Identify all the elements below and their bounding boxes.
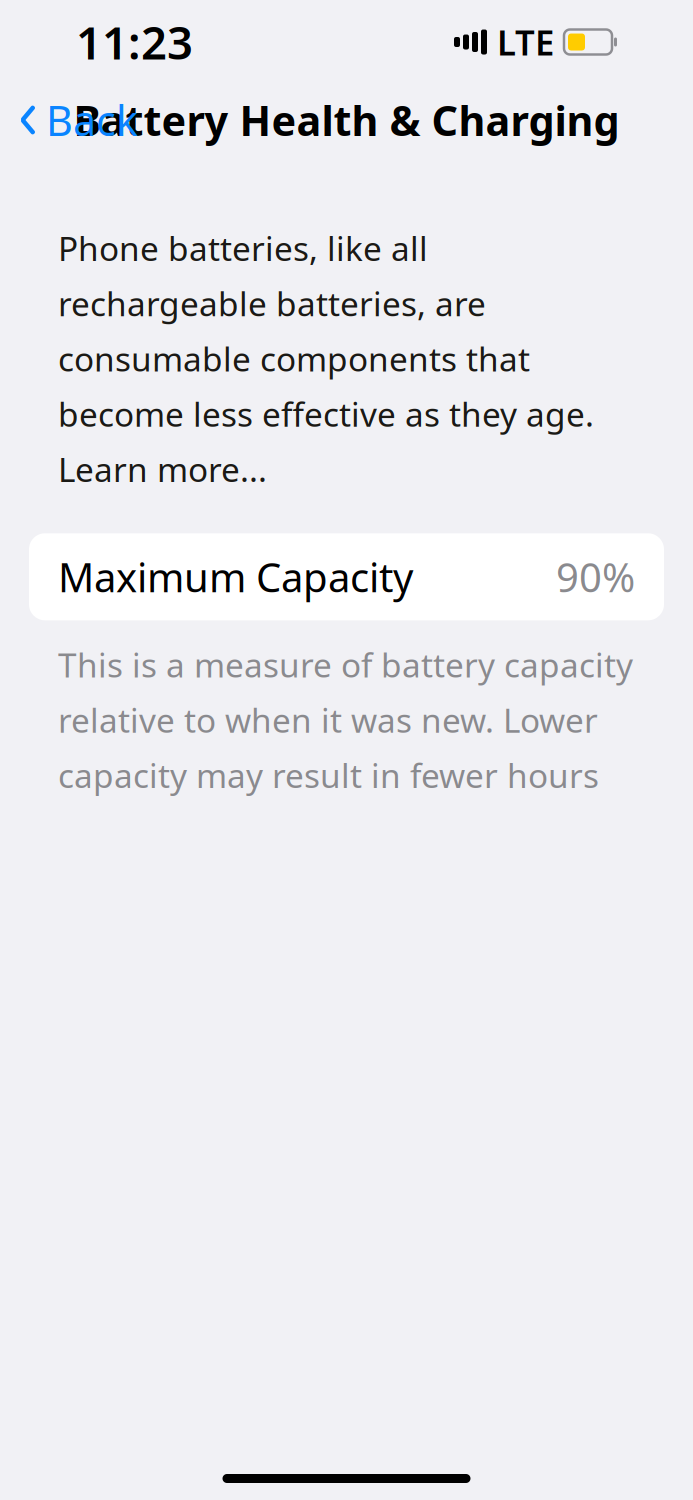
staticText: LTE (497, 19, 554, 65)
staticText: To reduce battery aging, iPhone learns f… (58, 1416, 629, 1500)
button[interactable]: Maximum Capacity (0, 533, 693, 620)
staticText: Maximum Capacity (58, 550, 413, 603)
button[interactable]: Back (4, 85, 152, 155)
staticText: 11:23 (76, 12, 193, 72)
staticText: This is a measure of battery capacity re… (58, 642, 633, 852)
staticText: Back (46, 93, 138, 147)
staticText: 90% (556, 550, 635, 603)
staticText: Phone batteries, like all rechargeable b… (58, 226, 594, 491)
staticText: Battery Health & Charging (73, 93, 619, 147)
